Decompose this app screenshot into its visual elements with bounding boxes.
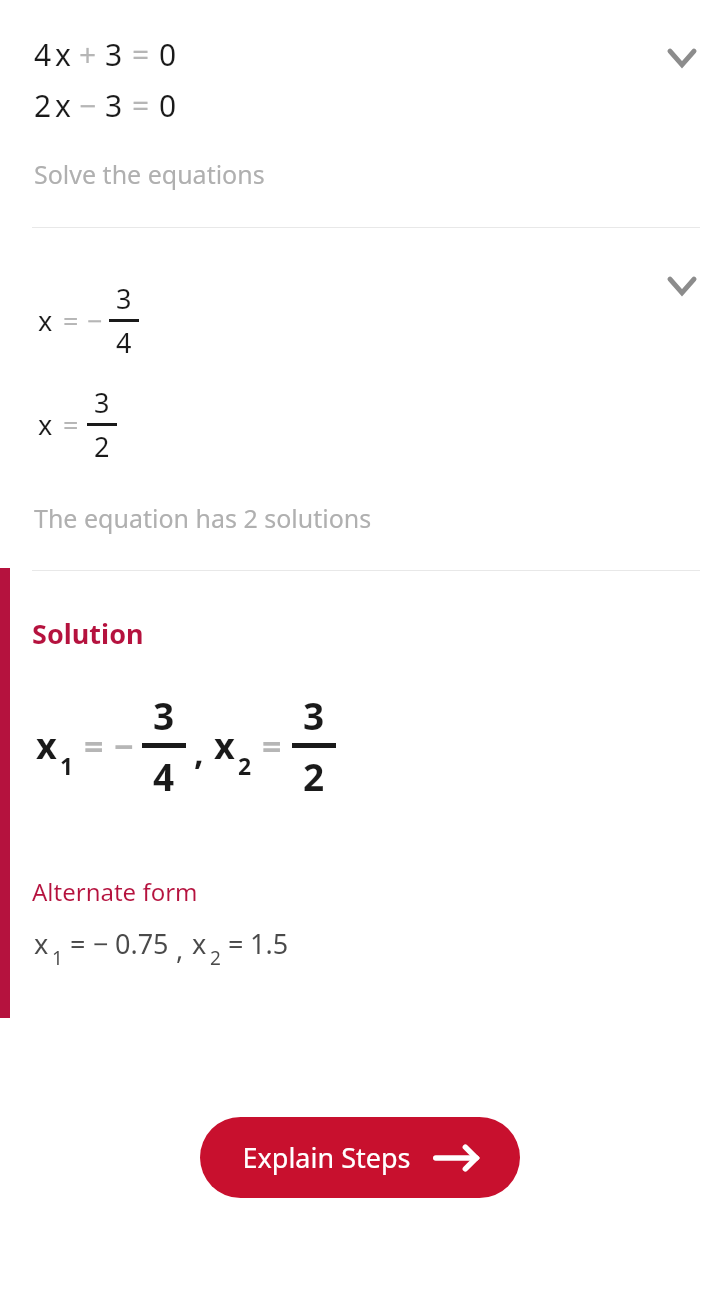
staticText: Alternate form xyxy=(32,875,198,908)
staticText: Explain Steps xyxy=(242,1139,411,1176)
staticText: 3 xyxy=(94,384,110,421)
staticText: = xyxy=(84,723,104,769)
staticText: 3 xyxy=(105,34,123,75)
staticText: x xyxy=(192,925,207,962)
staticText: x xyxy=(214,721,235,770)
staticText: 4 xyxy=(34,34,52,75)
staticText: 4 xyxy=(116,324,132,361)
staticText: 0 xyxy=(159,34,177,75)
staticText: − xyxy=(93,925,109,962)
staticText: = xyxy=(63,406,79,443)
button[interactable]: Expand equations xyxy=(662,38,702,78)
staticText: = xyxy=(132,85,150,126)
staticText: Solve the equations xyxy=(34,157,265,191)
staticText: 1 xyxy=(52,945,63,971)
staticText: 3 xyxy=(153,690,175,740)
staticText: − xyxy=(114,723,134,769)
staticText: 2 xyxy=(303,751,325,801)
staticText: 4 xyxy=(153,751,175,801)
staticText: x xyxy=(55,85,71,126)
staticText: Solution xyxy=(32,615,144,652)
staticText: x xyxy=(36,721,57,770)
button[interactable]: x xyxy=(0,262,720,472)
staticText: − xyxy=(87,302,103,339)
staticText: 0.75 xyxy=(115,925,169,962)
staticText: , xyxy=(194,729,204,775)
staticText: = xyxy=(228,925,244,962)
staticText: − xyxy=(79,85,97,126)
staticText: 2 xyxy=(34,85,52,126)
staticText: 3 xyxy=(105,85,123,126)
staticText: 3 xyxy=(116,280,132,317)
staticText: 2 xyxy=(238,750,252,781)
staticText: x xyxy=(34,925,49,962)
staticText: = xyxy=(70,925,86,962)
staticText: = xyxy=(262,723,282,769)
staticText: , xyxy=(176,930,184,967)
button[interactable]: Explain Steps xyxy=(200,1117,520,1198)
staticText: 3 xyxy=(303,690,325,740)
staticText: x xyxy=(38,302,53,339)
staticText: The equation has 2 solutions xyxy=(34,501,372,535)
staticText: = xyxy=(132,34,150,75)
staticText: 0 xyxy=(159,85,177,126)
button[interactable]: 4 xyxy=(0,30,720,130)
button[interactable]: Expand solutions xyxy=(662,266,702,306)
staticText: 1.5 xyxy=(250,925,289,962)
staticText: = xyxy=(63,302,79,339)
staticText: 2 xyxy=(94,428,110,465)
staticText: + xyxy=(79,34,97,75)
staticText: 2 xyxy=(210,945,221,971)
staticText: 1 xyxy=(60,750,74,781)
staticText: x xyxy=(55,34,71,75)
staticText: x xyxy=(38,406,53,443)
